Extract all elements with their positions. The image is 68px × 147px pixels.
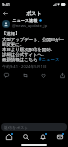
button[interactable]: Reply [2, 71, 10, 79]
staticText: ポスト [26, 10, 42, 16]
button[interactable]: Notifications [34, 131, 51, 142]
staticText: 【速報】 大型アップデート、公開日が一部変更に。 本日より順次配信を開始。 詳細… [2, 31, 66, 62]
button[interactable]: Share [58, 71, 66, 79]
staticText: 午前9:41 · 2024年5月1日 [2, 64, 47, 69]
staticText: ニュース速報 [12, 18, 38, 23]
button[interactable]: Repost [21, 71, 29, 79]
staticText: 9:41 [2, 2, 10, 7]
button[interactable]: 返信をポスト [1, 123, 67, 131]
staticText: @news_update_jp [12, 23, 48, 29]
staticText: 返信をポスト [4, 125, 29, 130]
button[interactable]: Like [39, 71, 47, 79]
button[interactable]: Back [1, 9, 9, 17]
button[interactable]: Messages [51, 131, 68, 142]
button[interactable]: Profile [2, 20, 10, 28]
button[interactable]: Search [17, 131, 34, 142]
button[interactable]: Home [0, 131, 17, 142]
